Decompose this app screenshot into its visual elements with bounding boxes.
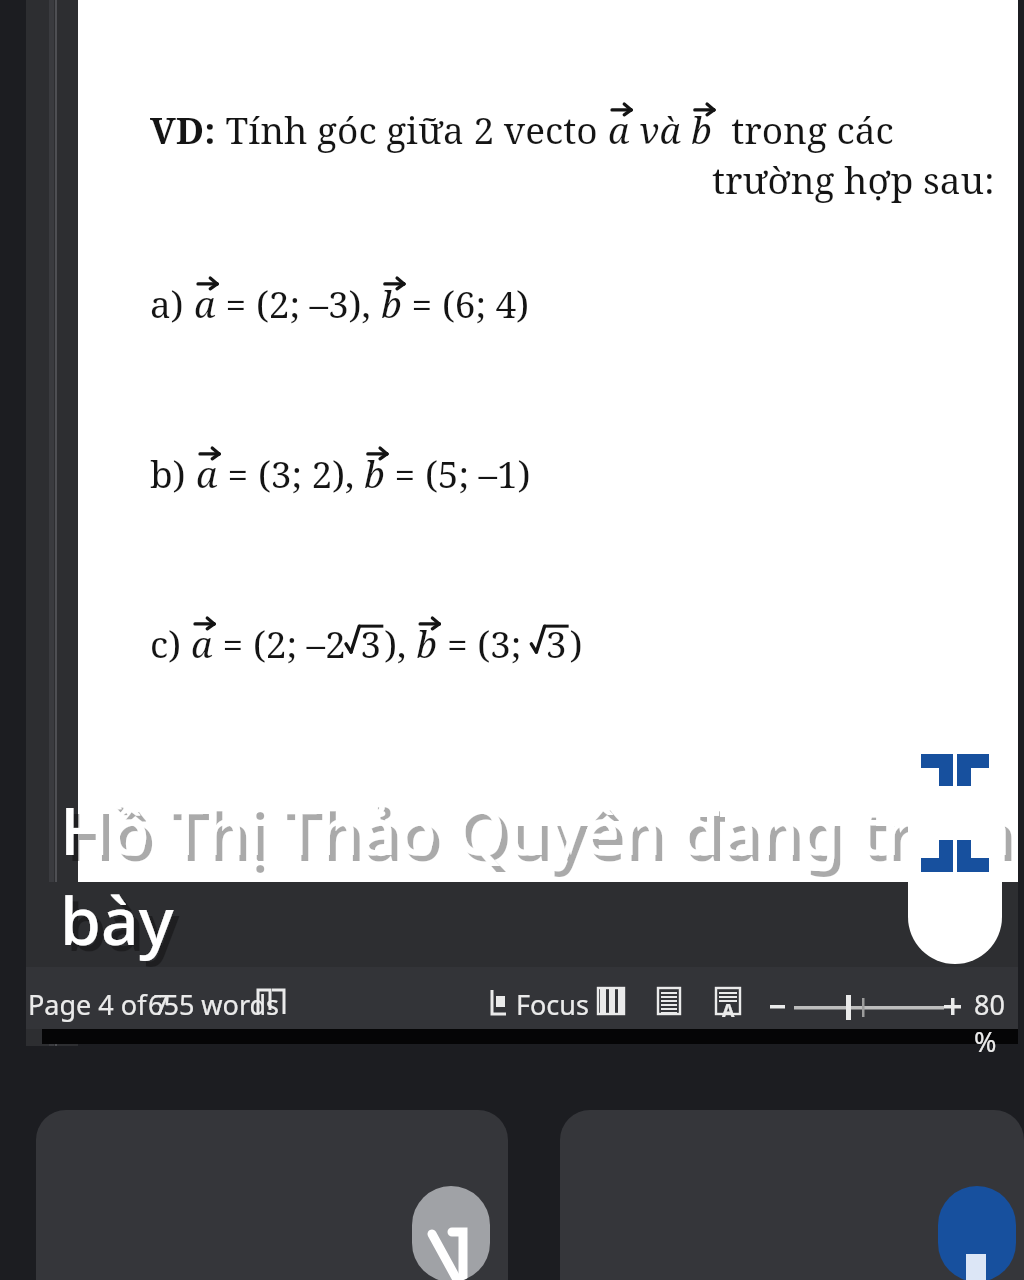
button[interactable] [560,1110,1024,1280]
button[interactable]: Raise hand [938,1186,1016,1280]
button[interactable] [36,1110,508,1280]
button[interactable]: Unmute microphone [412,1186,490,1280]
button[interactable]: Exit full screen [908,662,1002,964]
